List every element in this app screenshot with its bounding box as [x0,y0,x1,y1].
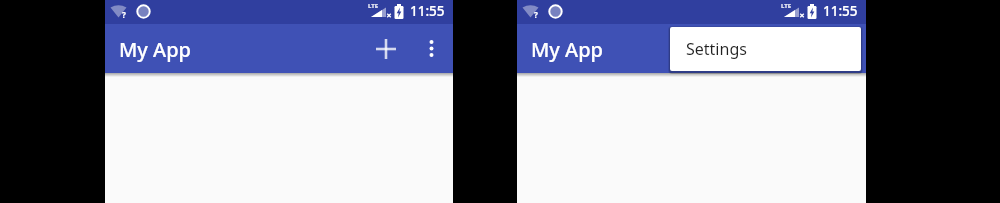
staticText: LTE [781,2,792,10]
button[interactable] [774,25,822,73]
staticText: My App [531,36,604,63]
staticText: My App [119,36,192,63]
staticText: 11:55 [410,2,445,20]
staticText: Settings [686,38,747,60]
button[interactable] [408,25,455,72]
staticText: ? [122,9,126,20]
button[interactable] [820,25,867,72]
staticText: 11:55 [823,2,858,20]
button[interactable]: Settings [670,27,861,71]
button[interactable] [362,25,410,73]
staticText: LTE [368,2,379,10]
staticText: ? [534,9,538,20]
